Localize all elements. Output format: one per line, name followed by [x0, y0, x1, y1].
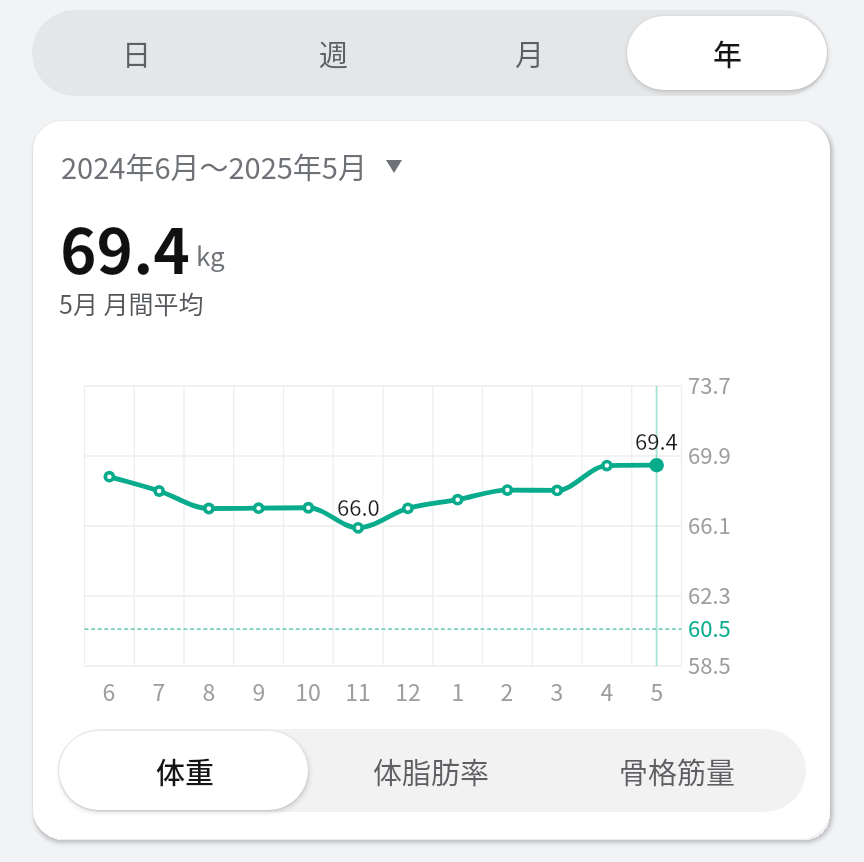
staticText: 69.9: [688, 438, 731, 470]
staticText: 10: [283, 674, 333, 707]
button[interactable]: 体重: [61, 729, 310, 812]
staticText: 60.5: [688, 611, 731, 643]
staticText: 62.3: [688, 578, 731, 610]
staticText: 1: [433, 674, 483, 707]
staticText: 69.4: [60, 202, 190, 292]
staticText: 週: [319, 32, 349, 74]
staticText: 月: [515, 32, 545, 74]
button[interactable]: 骨格筋量: [553, 729, 802, 812]
button[interactable]: 月: [430, 10, 629, 96]
staticText: 年: [713, 32, 743, 74]
staticText: 12: [383, 674, 433, 707]
button[interactable]: 週: [234, 10, 433, 96]
staticText: kg: [196, 236, 225, 274]
button[interactable]: 日: [37, 10, 236, 96]
staticText: 2024年6月～2025年5月: [61, 145, 367, 187]
staticText: 69.4: [635, 424, 678, 456]
staticText: 8: [184, 674, 234, 707]
staticText: 6: [84, 674, 134, 707]
staticText: 9: [234, 674, 284, 707]
staticText: 5: [632, 674, 682, 707]
staticText: 2: [482, 674, 532, 707]
button[interactable]: 年: [628, 10, 827, 96]
staticText: 7: [134, 674, 184, 707]
staticText: 66.0: [337, 490, 380, 522]
staticText: 体脂肪率: [373, 750, 490, 792]
other: Change period: [386, 160, 402, 173]
staticText: 11: [333, 674, 383, 707]
staticText: 3: [532, 674, 582, 707]
staticText: 日: [122, 32, 152, 74]
staticText: 骨格筋量: [619, 750, 736, 792]
staticText: 5月 月間平均: [59, 285, 204, 321]
button[interactable]: 2024年6月～2025年5月: [61, 145, 402, 187]
staticText: 58.5: [688, 648, 731, 680]
staticText: 73.7: [688, 368, 731, 400]
button[interactable]: 体脂肪率: [307, 729, 556, 812]
staticText: 体重: [156, 750, 215, 792]
staticText: 4: [582, 674, 632, 707]
staticText: 66.1: [688, 508, 731, 540]
